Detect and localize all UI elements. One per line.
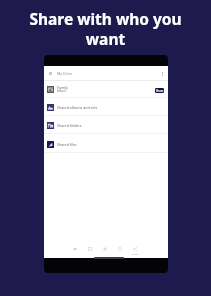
button[interactable]: Shared albums and sets <box>44 98 168 116</box>
staticText: Family <box>57 85 68 90</box>
button[interactable]: Shared files <box>44 135 168 153</box>
button[interactable]: Starred <box>99 243 111 255</box>
button[interactable]: Menu <box>44 66 168 80</box>
staticText: Share <box>132 252 139 255</box>
button[interactable]: Files <box>84 243 96 255</box>
button[interactable]: Share <box>129 243 141 255</box>
staticText: My Drive <box>57 71 73 76</box>
staticText: Shared files <box>57 142 77 147</box>
staticText: Shared folders <box>57 123 82 128</box>
staticText: Shared albums and sets <box>57 105 98 110</box>
button[interactable]: Shared folders <box>44 116 168 134</box>
staticText: Album <box>57 89 67 93</box>
button[interactable]: Family <box>44 80 168 98</box>
button[interactable]: Albums <box>114 243 126 255</box>
staticText: Share with who you want <box>0 8 211 50</box>
button[interactable]: Home <box>69 243 81 255</box>
button[interactable]: Share <box>155 88 164 93</box>
other: More options <box>162 72 163 76</box>
staticText: Share <box>156 89 164 93</box>
